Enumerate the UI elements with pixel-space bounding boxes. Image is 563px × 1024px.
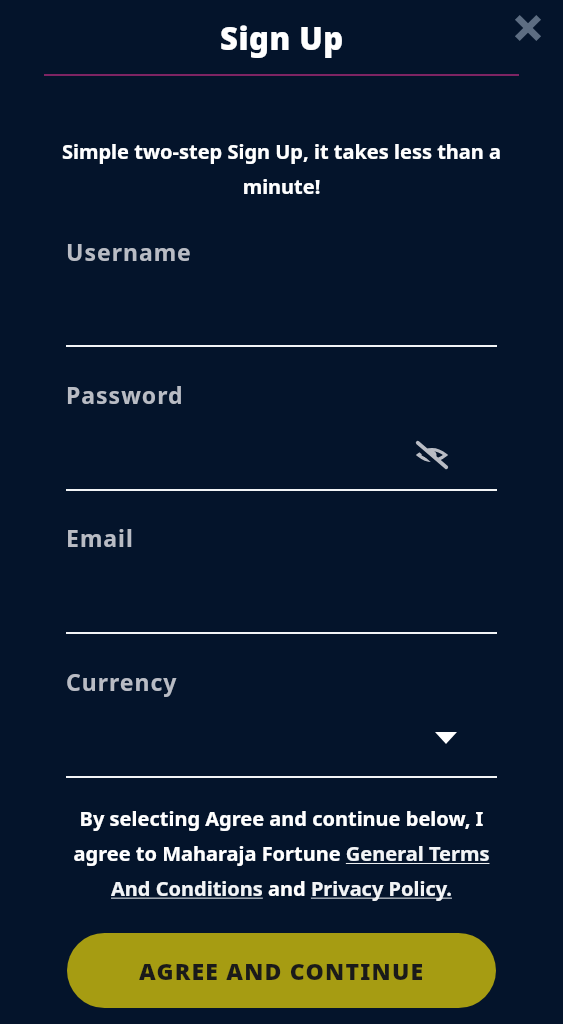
button[interactable]: AGREE AND CONTINUE — [67, 933, 496, 1008]
button[interactable]: Show password — [408, 431, 456, 479]
staticText: By selecting Agree and continue below, I… — [56, 805, 507, 902]
staticText: Username — [66, 236, 192, 267]
staticText: Email — [66, 522, 134, 553]
staticText: AGREE AND CONTINUE — [139, 955, 425, 986]
button[interactable]: Close — [504, 4, 552, 52]
staticText: Password — [66, 379, 184, 410]
button[interactable]: Select currency — [424, 716, 468, 760]
staticText: Currency — [66, 666, 178, 697]
staticText: Sign Up — [220, 17, 344, 59]
staticText: Simple two-step Sign Up, it takes less t… — [52, 138, 511, 200]
